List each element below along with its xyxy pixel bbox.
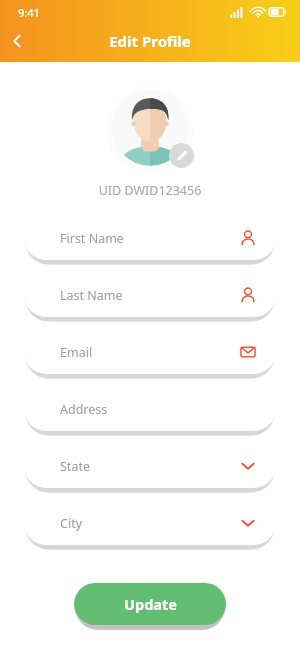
- button[interactable]: Last Name: [24, 273, 276, 317]
- staticText: Email: [60, 344, 93, 361]
- button[interactable]: Open dropdown: [238, 513, 258, 533]
- staticText: Last Name: [60, 287, 123, 304]
- other: Person: [238, 285, 258, 305]
- staticText: State: [60, 458, 90, 475]
- button[interactable]: State: [24, 444, 276, 488]
- staticText: First Name: [60, 230, 124, 247]
- button[interactable]: Address: [24, 387, 276, 431]
- other: Person: [238, 228, 258, 248]
- button[interactable]: Profile photo: [112, 90, 188, 166]
- button[interactable]: Email: [24, 330, 276, 374]
- staticText: Edit Profile: [0, 31, 300, 51]
- staticText: Update: [124, 594, 177, 614]
- button[interactable]: Open dropdown: [238, 456, 258, 476]
- staticText: 9:41: [18, 5, 40, 20]
- button[interactable]: Edit photo: [169, 143, 194, 168]
- staticText: UID DWID123456: [0, 182, 300, 199]
- button[interactable]: First Name: [24, 216, 276, 260]
- staticText: Address: [60, 401, 108, 418]
- button[interactable]: Back: [0, 24, 34, 58]
- button[interactable]: City: [24, 501, 276, 545]
- button[interactable]: Update: [74, 583, 226, 625]
- staticText: City: [60, 515, 83, 532]
- other: Email: [238, 342, 258, 362]
